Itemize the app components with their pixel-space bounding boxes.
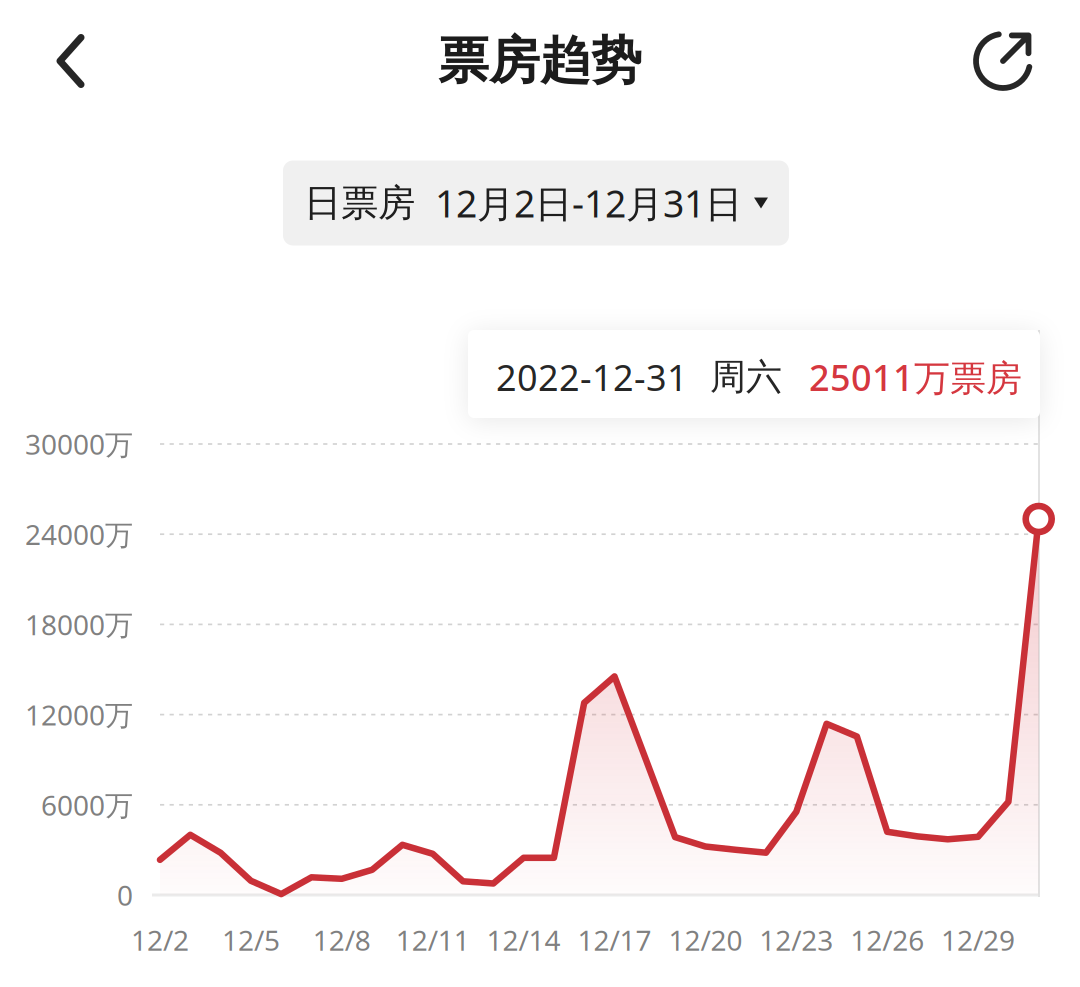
staticText: 12/8: [313, 921, 371, 959]
staticText: 日票房: [304, 180, 415, 226]
staticText: 0: [117, 876, 133, 914]
button[interactable]: Back: [0, 11, 121, 110]
staticText: 周六: [688, 355, 782, 399]
staticText: 18000万: [25, 606, 133, 643]
staticText: 12月2日-12月31日: [415, 178, 742, 228]
staticText: 12/17: [577, 921, 651, 959]
staticText: 票房趋势: [438, 30, 642, 92]
staticText: 12/20: [668, 921, 742, 959]
staticText: 12/11: [396, 921, 470, 959]
staticText: 12/14: [487, 921, 561, 959]
staticText: 2022-12-31: [496, 353, 688, 401]
button[interactable]: Share: [946, 8, 1080, 114]
button[interactable]: 日票房: [283, 160, 789, 245]
staticText: 12000万: [25, 696, 133, 733]
staticText: 25011万票房: [782, 353, 1022, 401]
staticText: 24000万: [25, 516, 133, 553]
staticText: 30000万: [25, 425, 133, 463]
staticText: 12/26: [850, 921, 924, 959]
staticText: 12/23: [759, 921, 833, 959]
staticText: 12/5: [222, 921, 280, 959]
staticText: 6000万: [41, 786, 133, 823]
staticText: 12/29: [941, 921, 1015, 959]
staticText: 12/2: [131, 921, 189, 959]
